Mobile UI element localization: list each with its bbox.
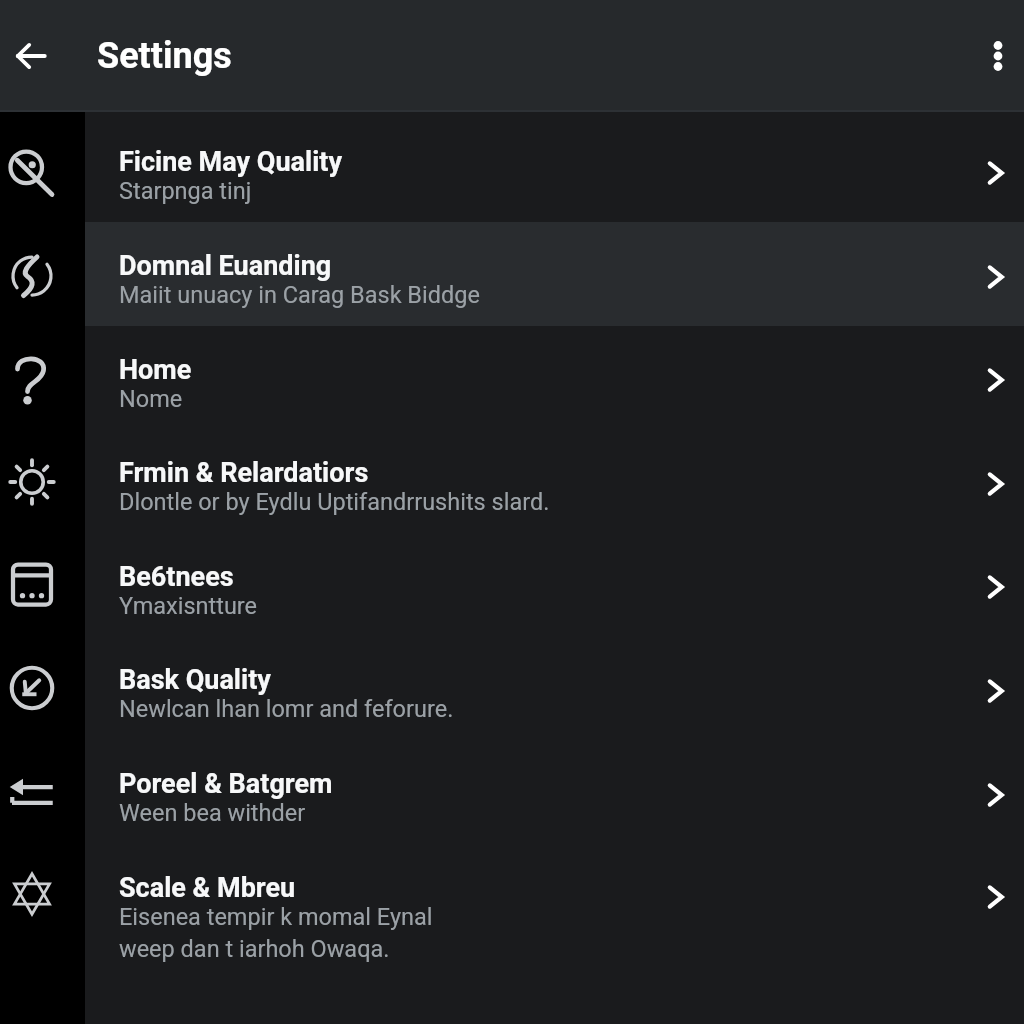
button[interactable]: Flash [0,224,64,327]
button[interactable]: Open [966,740,1024,844]
staticText: Frmin & Relardatiors [119,458,369,488]
button[interactable]: Domnal Euanding [85,222,1024,326]
button[interactable]: Favorite [0,842,64,945]
button[interactable]: Open [966,533,1024,636]
staticText: Newlcan lhan lomr and feforure. [119,692,454,724]
staticText: weep dan t iarhoh Owaqa. [119,932,390,964]
staticText: Ymaxisntture [119,589,258,621]
button[interactable]: Search [0,121,64,224]
staticText: Dlontle or by Eydlu Uptifandrrushits sla… [119,485,550,517]
staticText: Bask Quality [119,665,271,695]
button[interactable]: Reply [0,739,64,842]
staticText: Home [119,355,192,385]
staticText: Nome [119,382,183,414]
button[interactable]: Back [0,0,62,112]
button[interactable]: Open [966,636,1024,740]
button[interactable]: Frmin & Relardatiors [85,429,1024,533]
button[interactable]: Open [966,118,1024,222]
staticText: Domnal Euanding [119,251,332,281]
button[interactable]: Be6tnees [85,533,1024,636]
button[interactable]: Download [0,636,64,739]
staticText: Starpnga tinj [119,174,252,206]
staticText: Be6tnees [119,562,234,592]
button[interactable]: Scale & Mbreu [85,844,1024,992]
button[interactable]: Home [85,326,1024,429]
button[interactable]: Open [966,429,1024,533]
button[interactable]: Open [966,222,1024,326]
staticText: Settings [97,35,232,77]
button[interactable]: Open [966,844,1024,992]
staticText: Eisenea tempir k momal Eynal [119,900,433,932]
button[interactable]: Open [966,326,1024,429]
button[interactable]: More options [972,0,1024,112]
staticText: Ween bea withder [119,796,306,828]
button[interactable]: Poreel & Batgrem [85,740,1024,844]
button[interactable]: Bask Quality [85,636,1024,740]
staticText: Scale & Mbreu [119,873,296,903]
button[interactable]: Window [0,533,64,636]
button[interactable]: Help [0,327,64,430]
button[interactable]: Ficine May Quality [85,118,1024,222]
staticText: Ficine May Quality [119,147,343,177]
staticText: Maiit unuacy in Carag Bask Biddge [119,278,480,310]
staticText: Poreel & Batgrem [119,769,333,799]
button[interactable]: Brightness [0,430,64,533]
